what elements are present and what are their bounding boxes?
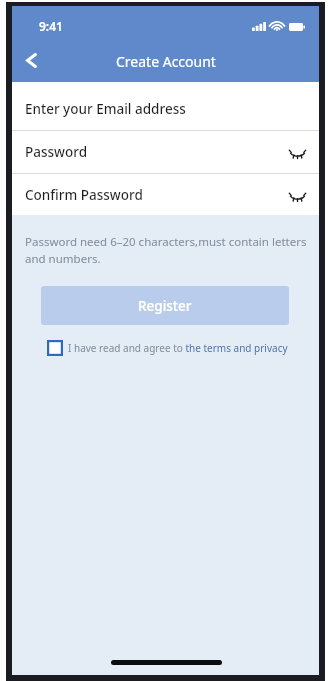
staticText: Confirm Password [25, 186, 143, 204]
staticText: 9:41 [39, 18, 63, 34]
button[interactable]: Agree to terms and privacy [47, 340, 63, 356]
staticText: Create Account [116, 52, 216, 71]
button[interactable]: Confirm Password [12, 174, 319, 215]
staticText: Password [25, 143, 88, 161]
button[interactable]: Show password [288, 191, 306, 203]
button[interactable]: Password [12, 131, 319, 173]
button[interactable]: Register [41, 286, 289, 325]
button[interactable]: Show password [288, 148, 306, 160]
staticText: Register [138, 297, 192, 315]
staticText: Enter your Email address [25, 100, 186, 118]
staticText: I have read and agree to the terms and p… [68, 341, 288, 355]
staticText: Password need 6–20 characters,must conta… [25, 234, 310, 266]
button[interactable]: Back [19, 48, 43, 72]
button[interactable]: Enter your Email address [12, 87, 319, 130]
